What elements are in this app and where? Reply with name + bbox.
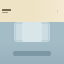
button[interactable]: More options bbox=[55, 9, 60, 14]
button[interactable]: Continue bbox=[13, 51, 51, 56]
button[interactable] bbox=[2, 8, 11, 14]
button[interactable] bbox=[14, 22, 50, 42]
